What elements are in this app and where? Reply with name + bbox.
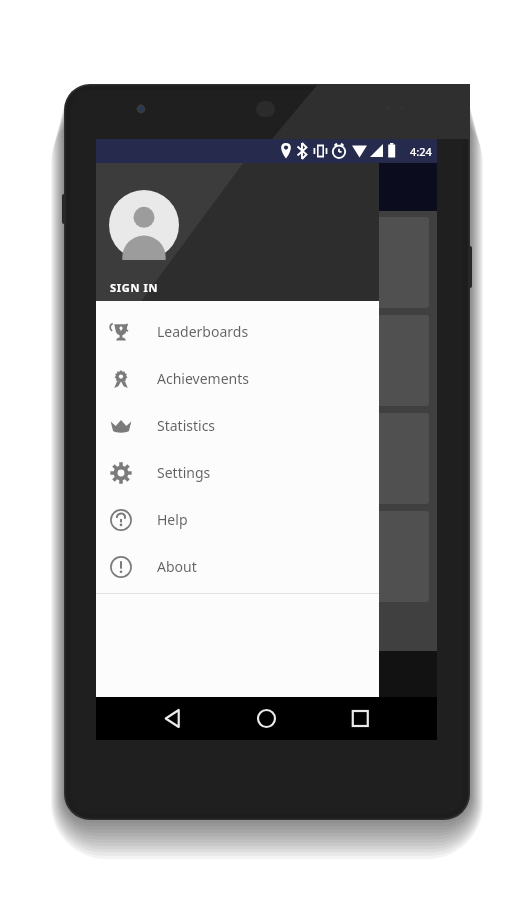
button[interactable]: Help [96,496,379,543]
button[interactable] [104,413,429,504]
staticText: 4:24 [410,144,432,159]
button[interactable]: Achievements [96,355,379,402]
button[interactable]: Statistics [96,402,379,449]
button[interactable]: Leaderboards [96,308,379,355]
staticText: SIGN IN [110,280,159,295]
button[interactable] [104,217,429,308]
staticText: Statistics [157,416,216,435]
staticText: Settings [157,463,211,482]
button[interactable] [104,511,429,602]
staticText: About [157,557,197,576]
button[interactable]: Settings [96,449,379,496]
button[interactable]: Profile picture [96,163,379,301]
staticText: Leaderboards [157,322,249,341]
staticText: Help [157,510,188,529]
staticText: Achievements [157,369,249,388]
button[interactable]: About [96,543,379,590]
button[interactable] [104,315,429,406]
other: Profile picture [109,190,179,260]
